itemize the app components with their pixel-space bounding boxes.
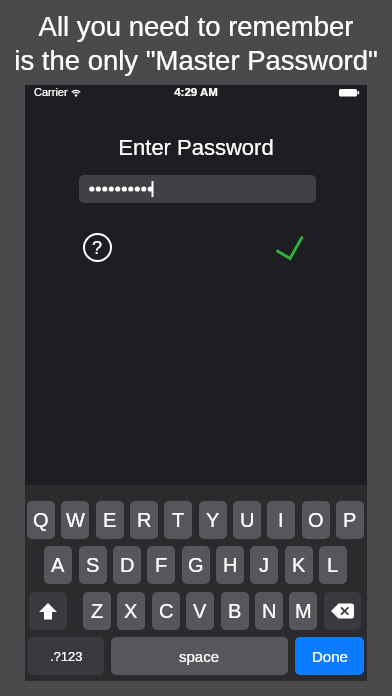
staticText: A: [51, 554, 65, 576]
button[interactable]: U: [233, 501, 261, 539]
staticText: L: [327, 554, 339, 576]
staticText: All you need to remember: [0, 11, 392, 42]
staticText: Y: [206, 509, 220, 531]
button[interactable]: O: [302, 501, 330, 539]
staticText: Carrier: [34, 86, 68, 98]
button[interactable]: D: [113, 546, 141, 584]
staticText: H: [223, 554, 238, 576]
staticText: D: [120, 554, 135, 576]
button[interactable]: Y: [199, 501, 227, 539]
button[interactable]: I: [267, 501, 295, 539]
button[interactable]: T: [164, 501, 192, 539]
button[interactable]: W: [61, 501, 89, 539]
button[interactable]: B: [221, 592, 249, 630]
button[interactable]: K: [285, 546, 313, 584]
button[interactable]: .?123: [28, 637, 104, 675]
staticText: R: [137, 509, 152, 531]
staticText: E: [103, 509, 117, 531]
button[interactable]: H: [216, 546, 244, 584]
button[interactable]: A: [44, 546, 72, 584]
staticText: N: [262, 600, 277, 622]
staticText: Q: [33, 509, 49, 531]
staticText: T: [172, 509, 185, 531]
button[interactable]: Q: [27, 501, 55, 539]
button[interactable]: E: [96, 501, 124, 539]
button[interactable]: Done: [295, 637, 364, 675]
button[interactable]: S: [79, 546, 107, 584]
staticText: .?123: [50, 649, 83, 664]
staticText: C: [159, 600, 174, 622]
button[interactable]: J: [250, 546, 278, 584]
staticText: S: [86, 554, 100, 576]
staticText: V: [193, 600, 207, 622]
button[interactable]: [79, 175, 316, 203]
button[interactable]: C: [152, 592, 180, 630]
staticText: U: [240, 509, 255, 531]
staticText: 4:29 AM: [25, 86, 367, 99]
button[interactable]: N: [255, 592, 283, 630]
staticText: G: [188, 554, 204, 576]
staticText: K: [292, 554, 306, 576]
button[interactable]: F: [147, 546, 175, 584]
button[interactable]: M: [289, 592, 317, 630]
button[interactable]: L: [319, 546, 347, 584]
staticText: M: [295, 600, 312, 622]
button[interactable]: V: [186, 592, 214, 630]
staticText: P: [343, 509, 357, 531]
button[interactable]: [275, 233, 305, 261]
button[interactable]: [29, 592, 67, 630]
button[interactable]: Z: [83, 592, 111, 630]
button[interactable]: X: [117, 592, 145, 630]
staticText: J: [259, 554, 269, 576]
staticText: Enter Password: [25, 135, 367, 160]
staticText: B: [228, 600, 242, 622]
staticText: space: [179, 648, 220, 665]
button[interactable]: ?: [83, 233, 112, 262]
staticText: I: [278, 509, 284, 531]
button[interactable]: P: [336, 501, 364, 539]
staticText: X: [124, 600, 138, 622]
button[interactable]: space: [111, 637, 288, 675]
staticText: is the only "Master Password": [0, 45, 392, 76]
button[interactable]: G: [182, 546, 210, 584]
staticText: O: [308, 509, 324, 531]
staticText: ?: [92, 238, 103, 258]
staticText: F: [155, 554, 168, 576]
button[interactable]: R: [130, 501, 158, 539]
staticText: Done: [312, 648, 348, 665]
staticText: Z: [91, 600, 104, 622]
button[interactable]: [324, 592, 361, 630]
staticText: W: [66, 509, 85, 531]
